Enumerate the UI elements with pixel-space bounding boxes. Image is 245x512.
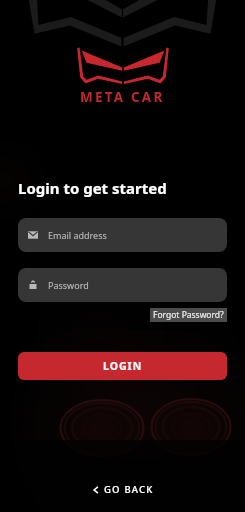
button[interactable]: LOGIN — [18, 352, 227, 380]
button[interactable]: Password — [18, 268, 227, 302]
staticText: Email address — [48, 229, 107, 241]
staticText: META CAR — [80, 88, 165, 106]
button[interactable]: Forgot Password? — [150, 308, 227, 322]
button[interactable]: GO BACK — [86, 479, 160, 500]
staticText: Login to get started — [18, 178, 167, 198]
staticText: Forgot Password? — [153, 309, 224, 321]
button[interactable]: Email address — [18, 218, 227, 252]
staticText: Password — [48, 279, 89, 291]
staticText: GO BACK — [104, 483, 154, 496]
staticText: LOGIN — [103, 359, 143, 373]
